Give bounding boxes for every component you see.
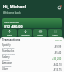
staticText: $12,480.00 [4, 24, 23, 28]
button[interactable]: Salary [0, 55, 64, 61]
button[interactable]: Amazon [0, 61, 64, 67]
staticText: Starbucks [2, 49, 15, 53]
staticText: Uber [2, 67, 9, 71]
staticText: Food & Drink [2, 53, 15, 55]
button[interactable]: Spotify [0, 43, 64, 49]
staticText: Subscription [2, 47, 15, 49]
staticText: Cards [37, 34, 43, 37]
staticText: Total Balance [4, 20, 19, 23]
staticText: Shopping [2, 65, 12, 67]
button[interactable]: Uber [0, 67, 64, 72]
staticText: Salary [2, 55, 10, 59]
staticText: Transactions [2, 38, 55, 42]
button[interactable]: See all [55, 39, 62, 42]
button[interactable]: Total Balance [2, 18, 62, 28]
staticText: Send [7, 34, 12, 37]
staticText: Income [2, 59, 10, 61]
staticText: -$5.40 [54, 51, 62, 54]
button[interactable]: Request [18, 29, 32, 37]
staticText: -$42.10 [53, 63, 62, 66]
button[interactable]: Notifications [57, 5, 62, 10]
staticText: +$3,200 [52, 57, 62, 60]
staticText: -$9.99 [54, 45, 62, 48]
staticText: See all [55, 39, 62, 42]
staticText: -$13.75 [53, 68, 62, 71]
staticText: Spotify [2, 43, 11, 47]
button[interactable]: Send [2, 29, 17, 37]
staticText: Amazon [2, 61, 13, 65]
button[interactable]: Cards [33, 29, 47, 37]
staticText: Request [21, 34, 30, 37]
button[interactable]: More [48, 29, 62, 37]
staticText: More [52, 34, 58, 37]
staticText: Welcome back [3, 11, 21, 15]
staticText: Hi, Michael [3, 4, 27, 10]
button[interactable]: Starbucks [0, 49, 64, 55]
